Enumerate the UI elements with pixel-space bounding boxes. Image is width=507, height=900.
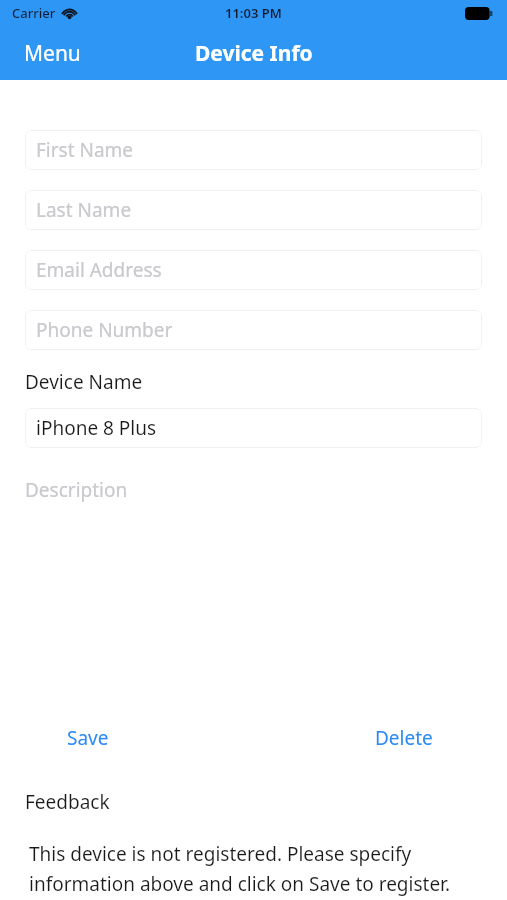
staticText: Phone Number <box>36 317 173 343</box>
staticText: Device Name <box>25 369 143 395</box>
button[interactable]: Email Address <box>25 250 482 290</box>
staticText: 11:03 PM <box>225 4 282 22</box>
staticText: Save <box>67 725 109 751</box>
staticText: This device is not registered. Please sp… <box>29 841 482 896</box>
staticText: Menu <box>24 39 81 68</box>
other: Wi-Fi signal <box>61 7 78 19</box>
staticText: iPhone 8 Plus <box>36 415 157 441</box>
staticText: Delete <box>375 725 433 751</box>
button[interactable]: First Name <box>25 130 482 170</box>
button[interactable]: Delete <box>363 719 445 757</box>
button[interactable]: Save <box>55 719 121 757</box>
button[interactable]: Last Name <box>25 190 482 230</box>
staticText: Carrier <box>12 4 56 22</box>
staticText: Email Address <box>36 257 162 283</box>
staticText: Device Info <box>195 39 313 68</box>
staticText: Description <box>25 477 128 503</box>
staticText: Feedback <box>25 789 110 815</box>
button[interactable]: Description <box>25 469 482 719</box>
button[interactable]: iPhone 8 Plus <box>25 408 482 448</box>
staticText: First Name <box>36 137 134 163</box>
staticText: Last Name <box>36 197 132 223</box>
other: Battery full <box>465 7 493 20</box>
button[interactable]: Phone Number <box>25 310 482 350</box>
button[interactable]: Menu <box>0 31 105 76</box>
